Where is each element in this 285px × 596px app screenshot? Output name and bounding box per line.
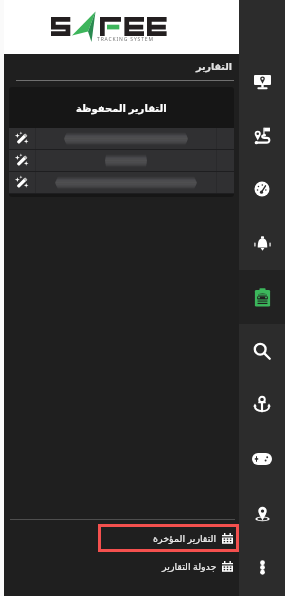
- staticText: التقارير المؤخرة: [153, 532, 217, 545]
- staticText: التقارير المحفوظة: [76, 101, 167, 115]
- button[interactable]: Reports: [239, 270, 285, 324]
- button[interactable]: [9, 150, 234, 171]
- button[interactable]: [9, 128, 234, 149]
- staticText: التقارير: [196, 61, 233, 72]
- button[interactable]: [9, 172, 234, 193]
- button[interactable]: Speed: [239, 162, 285, 216]
- button[interactable]: Alerts: [239, 216, 285, 270]
- button[interactable]: Anchor: [239, 378, 285, 432]
- staticText: جدولة التقارير: [162, 560, 217, 573]
- button[interactable]: Remote control: [239, 432, 285, 486]
- button[interactable]: Routes: [239, 108, 285, 162]
- button[interactable]: Search: [239, 324, 285, 378]
- button[interactable]: Places: [239, 486, 285, 540]
- button[interactable]: جدولة التقارير: [162, 552, 233, 580]
- button[interactable]: Live map: [239, 54, 285, 108]
- button[interactable]: التقارير المؤخرة: [153, 524, 233, 552]
- button[interactable]: More: [239, 540, 285, 594]
- staticText: TRACKING SYSTEM: [97, 36, 154, 43]
